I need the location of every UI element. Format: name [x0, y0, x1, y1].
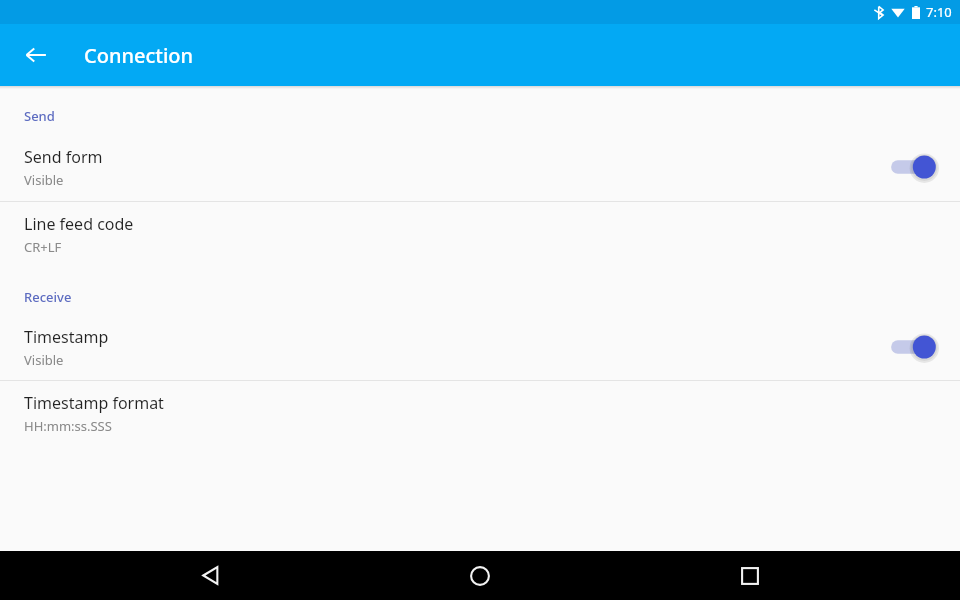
staticText: Line feed code [24, 213, 134, 235]
button[interactable]: Back [14, 33, 58, 77]
staticText: Timestamp format [24, 392, 164, 414]
button[interactable]: Recent apps [690, 551, 810, 600]
button[interactable]: Toggle [888, 330, 940, 364]
button[interactable]: Timestamp [0, 314, 960, 380]
button[interactable]: Line feed code [0, 202, 960, 266]
button[interactable]: Back [150, 551, 270, 600]
staticText: Visible [24, 171, 64, 189]
button[interactable]: Home [420, 551, 540, 600]
button[interactable]: Send form [0, 133, 960, 201]
staticText: Receive [24, 288, 72, 306]
button[interactable]: Timestamp format [0, 381, 960, 445]
staticText: CR+LF [24, 238, 62, 256]
button[interactable]: Toggle [888, 150, 940, 184]
staticText: HH:mm:ss.SSS [24, 417, 112, 435]
staticText: Send [24, 107, 55, 125]
staticText: Timestamp [24, 326, 109, 348]
staticText: 7:10 [926, 3, 952, 21]
staticText: Send form [24, 146, 103, 168]
staticText: Connection [84, 42, 194, 69]
staticText: Visible [24, 351, 64, 369]
